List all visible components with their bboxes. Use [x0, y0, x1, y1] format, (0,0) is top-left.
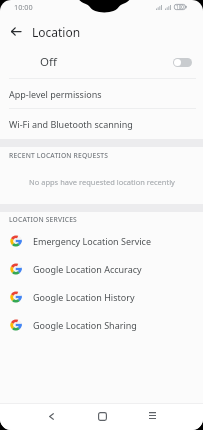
- staticText: 10:00: [14, 2, 33, 12]
- button[interactable]: Back: [0, 14, 32, 46]
- button[interactable]: Recent apps: [134, 404, 170, 430]
- staticText: Location: [32, 24, 81, 40]
- staticText: Google Location Sharing: [33, 319, 137, 331]
- staticText: Wi-Fi and Bluetooth scanning: [9, 118, 133, 130]
- staticText: LOCATION SERVICES: [9, 215, 77, 224]
- button[interactable]: Wi-Fi and Bluetooth scanning: [0, 109, 203, 139]
- button[interactable]: App-level permissions: [0, 79, 203, 108]
- staticText: Off: [40, 54, 57, 70]
- staticText: Google Location History: [33, 291, 135, 303]
- button[interactable]: Google Location History: [0, 283, 203, 311]
- button[interactable]: Back: [33, 404, 69, 430]
- staticText: Emergency Location Service: [33, 235, 152, 247]
- staticText: RECENT LOCATION REQUESTS: [9, 151, 109, 160]
- staticText: 100: [176, 4, 184, 10]
- staticText: Google Location Accuracy: [33, 263, 142, 275]
- button[interactable]: Off: [0, 46, 203, 78]
- button[interactable]: Home: [84, 404, 120, 430]
- button[interactable]: Emergency Location Service: [0, 227, 203, 255]
- staticText: App-level permissions: [9, 88, 102, 100]
- staticText: No apps have requested location recently: [29, 177, 175, 187]
- button[interactable]: Google Location Sharing: [0, 311, 203, 339]
- button[interactable]: Google Location Accuracy: [0, 255, 203, 283]
